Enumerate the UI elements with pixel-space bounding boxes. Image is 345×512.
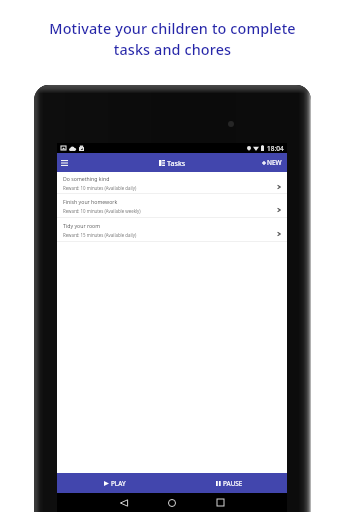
staticText: PAUSE <box>223 479 243 488</box>
button[interactable]: PLAY <box>57 473 172 493</box>
staticText: Tasks <box>167 158 186 168</box>
staticText: Reward: 10 minutes (Available daily) <box>63 185 137 191</box>
button[interactable]: NEW <box>258 153 287 172</box>
staticText: Finish your homework <box>63 198 118 205</box>
staticText: Motivate your children to complete tasks… <box>49 19 296 59</box>
staticText: PLAY <box>111 479 126 488</box>
staticText: Tidy your room <box>63 222 101 229</box>
button[interactable]: Back <box>113 493 135 512</box>
staticText: Reward: 10 minutes (Available weekly) <box>63 208 141 214</box>
button[interactable]: Finish your homework <box>57 194 287 217</box>
button[interactable]: Tidy your room <box>57 218 287 241</box>
staticText: Do something kind <box>63 175 110 182</box>
button[interactable]: Home <box>161 493 183 512</box>
button[interactable]: Menu <box>57 153 71 172</box>
button[interactable]: Do something kind <box>57 172 287 193</box>
staticText: Reward: 15 minutes (Available daily) <box>63 232 137 238</box>
staticText: 18:04 <box>267 144 284 153</box>
button[interactable]: PAUSE <box>172 473 287 493</box>
staticText: NEW <box>267 158 282 167</box>
button[interactable]: Recents <box>209 493 231 512</box>
